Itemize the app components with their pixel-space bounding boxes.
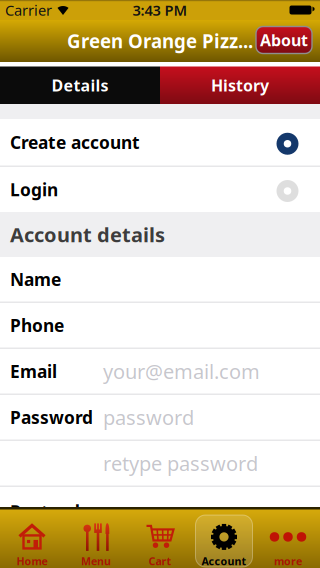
staticText: retype password <box>103 450 258 477</box>
button[interactable]: Login <box>0 167 320 212</box>
button[interactable]: Email <box>0 349 320 393</box>
button[interactable]: Details <box>0 66 160 104</box>
button[interactable]: retype password <box>0 441 320 485</box>
button[interactable]: Name <box>0 257 320 301</box>
staticText: your@email.com <box>103 358 260 385</box>
staticText: Menu <box>81 554 111 568</box>
button[interactable]: History <box>160 66 320 104</box>
staticText: 3:43 PM <box>132 0 187 20</box>
staticText: Account details <box>10 221 165 248</box>
button[interactable]: Create account <box>0 119 320 165</box>
button[interactable]: Menu <box>64 507 128 568</box>
staticText: History <box>211 75 269 96</box>
staticText: Cart <box>148 554 171 568</box>
staticText: Account <box>201 554 246 568</box>
button[interactable]: Account <box>192 507 256 568</box>
staticText: Postcode <box>10 500 90 523</box>
staticText: Create account <box>10 131 140 154</box>
staticText: Details <box>51 75 108 96</box>
button[interactable]: Cart <box>128 507 192 568</box>
staticText: Password <box>10 406 93 429</box>
staticText: Name <box>10 268 61 291</box>
staticText: Home <box>16 554 47 568</box>
button[interactable]: Password <box>0 395 320 439</box>
staticText: Carrier <box>5 0 52 20</box>
staticText: Green Orange Pizz... <box>67 29 253 53</box>
staticText: Phone <box>10 314 64 337</box>
button[interactable]: About <box>256 26 312 53</box>
staticText: Email <box>10 360 57 383</box>
button[interactable]: Postcode <box>0 487 320 507</box>
staticText: more <box>274 554 302 568</box>
button[interactable]: more <box>256 507 320 568</box>
staticText: About <box>260 29 308 51</box>
staticText: Login <box>10 178 58 201</box>
staticText: password <box>103 404 194 431</box>
button[interactable]: Phone <box>0 303 320 347</box>
button[interactable]: Home <box>0 507 64 568</box>
